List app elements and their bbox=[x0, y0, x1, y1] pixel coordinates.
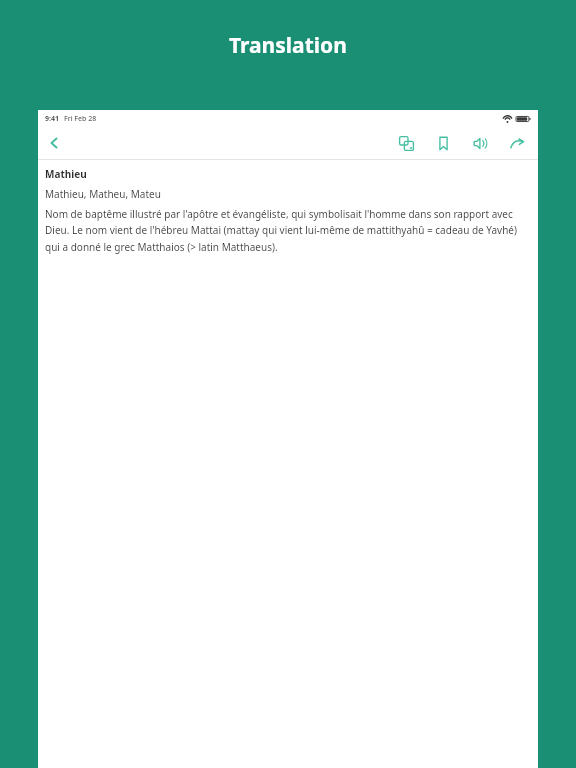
button[interactable]: Bookmark bbox=[430, 130, 456, 156]
staticText: Nom de baptême illustré par l'apôtre et … bbox=[45, 207, 528, 254]
staticText: Mathieu, Matheu, Mateu bbox=[45, 187, 161, 201]
staticText: Translation bbox=[229, 31, 347, 60]
staticText: 9:41 bbox=[45, 114, 59, 124]
button[interactable]: Copy cards bbox=[393, 130, 419, 156]
staticText: Mathieu bbox=[45, 167, 87, 181]
button[interactable]: Back bbox=[40, 129, 68, 157]
staticText: Fri Feb 28 bbox=[64, 114, 97, 124]
button[interactable]: Listen bbox=[467, 130, 493, 156]
button[interactable]: Share bbox=[504, 130, 530, 156]
